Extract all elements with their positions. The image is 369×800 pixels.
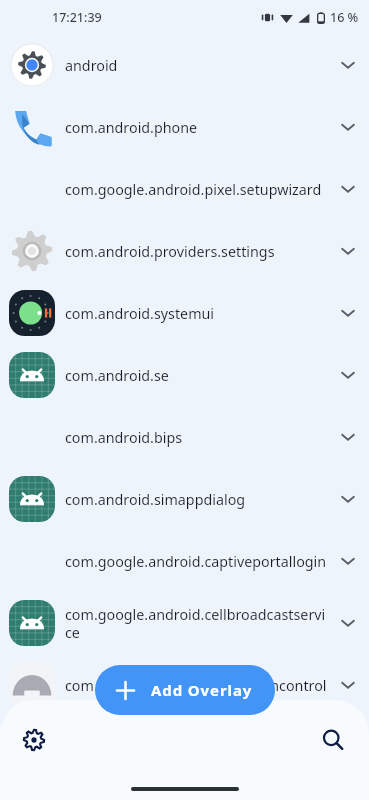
button[interactable]: com.android.systemui	[0, 282, 369, 344]
staticText: 16 %	[330, 9, 359, 26]
staticText: android	[65, 56, 329, 75]
staticText: com.android.phone	[65, 118, 329, 137]
staticText: com.android.providers.settings	[65, 242, 329, 261]
button[interactable]: Add Overlay	[95, 665, 275, 715]
staticText: com.android.se	[65, 366, 329, 385]
button[interactable]: com.android.providers.settings	[0, 220, 369, 282]
staticText: 17:21:39	[52, 9, 102, 26]
button[interactable]: com.google.android.pixel.setupwizard	[0, 158, 369, 220]
staticText: com.android.systemui	[65, 304, 329, 323]
staticText: com.android.simappdialog	[65, 490, 329, 509]
staticText: com.google.android.permissioncontrol	[65, 676, 329, 695]
staticText: com.google.android.captiveportallogin	[65, 552, 329, 571]
staticText: Add Overlay	[151, 680, 253, 700]
button[interactable]: android	[0, 34, 369, 96]
button[interactable]: com.android.bips	[0, 406, 369, 468]
button[interactable]: com.google.android.captiveportallogin	[0, 530, 369, 592]
button[interactable]: com.google.android.permissioncontrol	[0, 654, 369, 716]
button[interactable]: com.google.android.cellbroadcastservice	[0, 592, 369, 654]
button[interactable]: com.android.se	[0, 344, 369, 406]
staticText: com.google.android.pixel.setupwizard	[65, 180, 329, 199]
button[interactable]: com.android.phone	[0, 96, 369, 158]
button[interactable]: Settings	[12, 718, 56, 762]
button[interactable]: com.android.simappdialog	[0, 468, 369, 530]
button[interactable]: Search	[311, 718, 355, 762]
staticText: com.android.bips	[65, 428, 329, 447]
staticText: com.google.android.cellbroadcastservice	[65, 605, 329, 642]
